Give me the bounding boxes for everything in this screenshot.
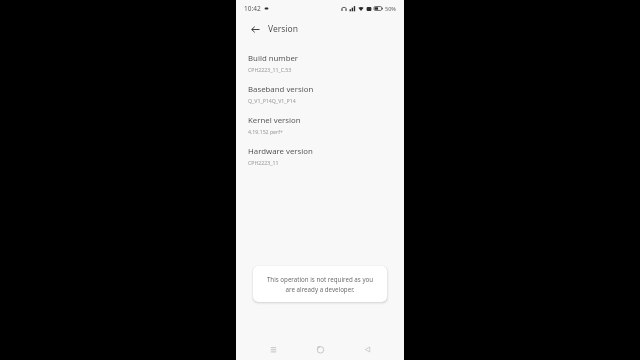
button[interactable]: Kernel version — [236, 110, 404, 141]
staticText: 4.19.152 perf+ — [248, 128, 283, 135]
button[interactable]: Build number — [236, 48, 404, 79]
staticText: CPH2223_11 — [248, 159, 279, 166]
button[interactable]: Home — [310, 339, 330, 359]
button[interactable]: Recents — [263, 339, 283, 359]
staticText: Q_V1_P14Q_V1_P14 — [248, 97, 296, 104]
staticText: Version — [268, 23, 298, 35]
staticText: This operation is not required as you ar… — [263, 275, 377, 293]
button[interactable]: Baseband version — [236, 79, 404, 110]
staticText: CPH2223_11_C.53 — [248, 66, 292, 73]
staticText: 50% — [385, 5, 396, 12]
staticText: Build number — [248, 53, 299, 64]
button[interactable]: Back — [357, 339, 377, 359]
button[interactable]: Hardware version — [236, 141, 404, 172]
staticText: 10:42 — [244, 4, 261, 13]
button[interactable]: Back — [246, 20, 264, 38]
staticText: Hardware version — [248, 146, 313, 157]
staticText: Kernel version — [248, 115, 301, 126]
staticText: Baseband version — [248, 84, 314, 95]
